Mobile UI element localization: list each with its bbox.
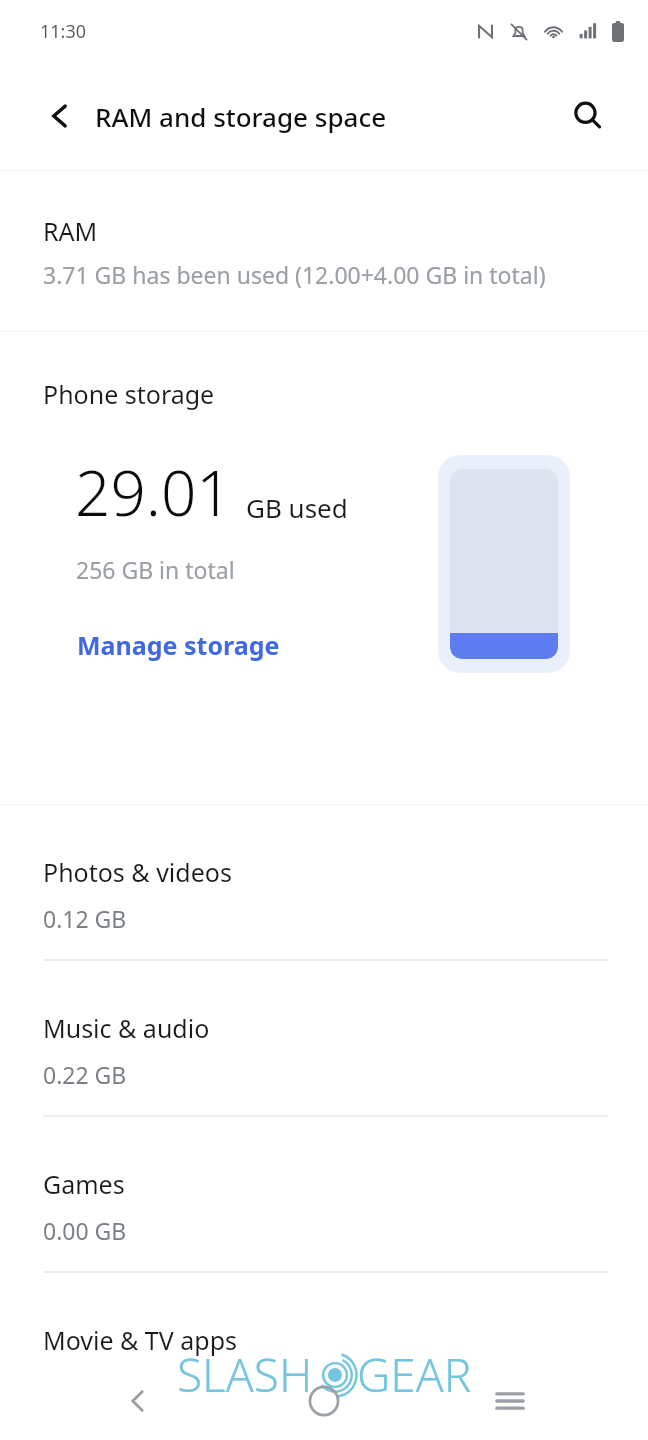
- staticText: Manage storage: [77, 628, 280, 662]
- staticText: 29.01: [75, 450, 232, 534]
- staticText: 0.22 GB: [43, 1059, 127, 1090]
- staticText: 256 GB in total: [76, 554, 235, 585]
- staticText: Music & audio: [43, 1011, 210, 1045]
- staticText: 11:30: [40, 19, 87, 44]
- button[interactable]: RAM: [0, 171, 648, 331]
- staticText: 0.12 GB: [43, 903, 127, 934]
- staticText: 0.00 GB: [43, 1215, 127, 1246]
- button[interactable]: Back: [34, 90, 86, 142]
- button[interactable]: Search: [560, 88, 616, 144]
- staticText: GEAR: [357, 1343, 472, 1406]
- button[interactable]: Home: [295, 1372, 353, 1430]
- staticText: GB used: [246, 490, 348, 525]
- staticText: Movie & TV apps: [43, 1323, 238, 1357]
- button[interactable]: Music & audio: [0, 961, 648, 1117]
- staticText: 3.71 GB has been used (12.00+4.00 GB in …: [43, 259, 546, 290]
- staticText: Phone storage: [43, 377, 215, 411]
- staticText: SLASH: [177, 1343, 313, 1406]
- staticText: RAM and storage space: [95, 99, 387, 134]
- staticText: Photos & videos: [43, 855, 232, 889]
- staticText: RAM: [43, 214, 98, 248]
- button[interactable]: Back: [110, 1373, 166, 1429]
- button[interactable]: Photos & videos: [0, 805, 648, 961]
- button[interactable]: Games: [0, 1117, 648, 1273]
- button[interactable]: Recent apps: [482, 1373, 538, 1429]
- button[interactable]: Manage storage: [62, 620, 295, 670]
- staticText: Games: [43, 1167, 125, 1201]
- button[interactable]: Movie & TV apps: [0, 1273, 648, 1429]
